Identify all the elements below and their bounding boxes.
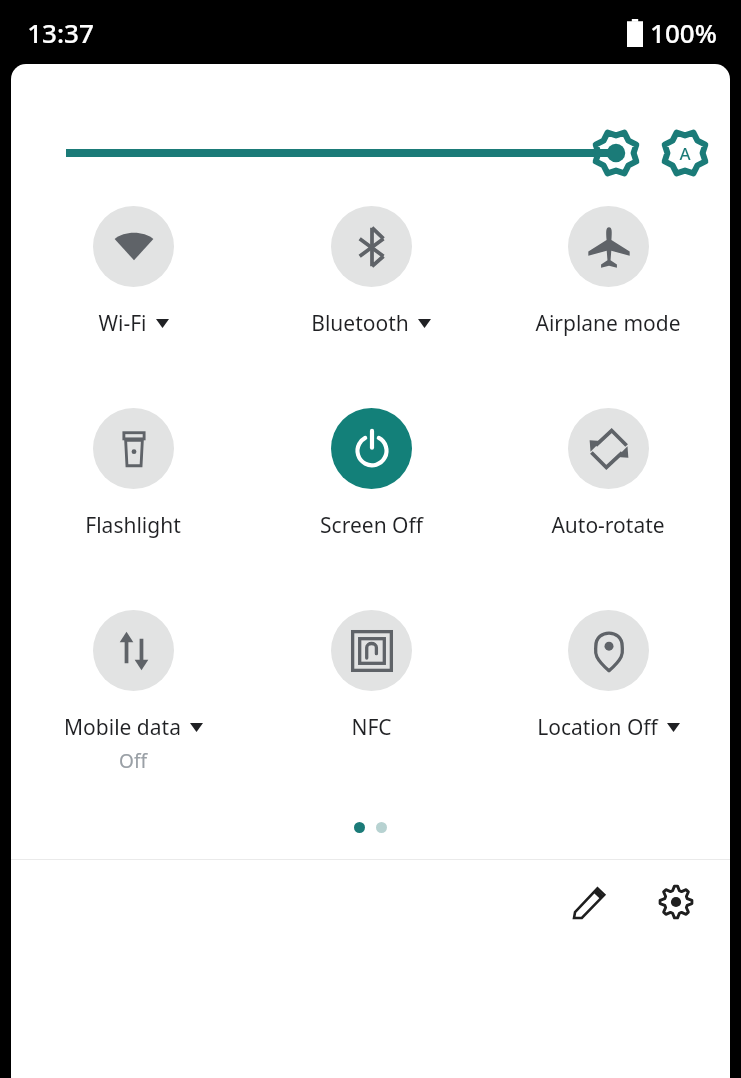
staticText: Bluetooth — [311, 309, 409, 338]
staticText: Wi-Fi — [98, 309, 147, 338]
button[interactable]: Mobile data — [18, 610, 248, 774]
staticText: Flashlight — [85, 511, 181, 540]
button[interactable]: Auto-rotate — [493, 408, 723, 540]
staticText: 13:37 — [27, 15, 94, 50]
button[interactable]: Screen Off — [256, 408, 486, 540]
button[interactable]: Flashlight — [18, 408, 248, 540]
button[interactable]: Airplane mode — [493, 206, 723, 338]
staticText: Auto-rotate — [551, 511, 665, 540]
button[interactable]: NFC — [256, 610, 486, 742]
staticText: A — [679, 142, 691, 165]
button[interactable]: Settings — [648, 874, 704, 930]
button[interactable]: Bluetooth — [256, 206, 486, 338]
staticText: Mobile data — [64, 713, 181, 742]
staticText: Location Off — [537, 713, 658, 742]
staticText: Screen Off — [320, 511, 423, 540]
button[interactable]: Wi-Fi — [18, 206, 248, 338]
button[interactable]: Auto brightness — [662, 130, 708, 176]
staticText: Off — [119, 748, 147, 774]
staticText: Airplane mode — [535, 309, 681, 338]
button[interactable]: Edit — [562, 874, 618, 930]
button[interactable]: Brightness — [66, 130, 712, 176]
button[interactable]: Location Off — [493, 610, 723, 742]
staticText: NFC — [351, 713, 392, 742]
staticText: 100% — [650, 15, 717, 50]
